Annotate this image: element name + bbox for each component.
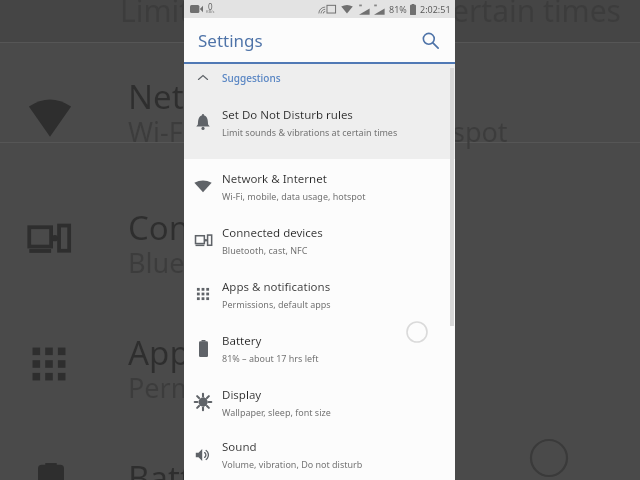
staticText: Sound [222, 439, 257, 455]
staticText: Conn [128, 205, 210, 250]
button[interactable]: Sound [184, 429, 455, 480]
staticText: 81% [389, 3, 407, 15]
staticText: Display [222, 387, 262, 403]
staticText: Set Do Not Disturb rules [222, 107, 353, 123]
staticText: Wi-Fi, mobile, data usage, hotspot [222, 190, 366, 202]
staticText: Network & Internet [222, 171, 327, 187]
staticText: Wallpaper, sleep, font size [222, 406, 331, 418]
staticText: Settings [198, 29, 263, 52]
staticText: Connected devices [222, 225, 323, 241]
button[interactable]: Connected devices [184, 213, 455, 267]
button[interactable]: Set Do Not Disturb rules [184, 91, 455, 153]
staticText: Bluet [128, 244, 195, 281]
staticText: Wi-Fi, [128, 113, 197, 150]
staticText: 0 [208, 1, 213, 12]
staticText: ertain times [452, 0, 621, 31]
staticText: Limit [120, 0, 191, 31]
staticText: Suggestions [222, 71, 281, 85]
staticText: Netw [128, 74, 210, 119]
button[interactable]: Battery [184, 321, 455, 375]
button[interactable]: Search [413, 23, 447, 57]
button[interactable]: Display [184, 375, 455, 429]
staticText: 81% – about 17 hrs left [222, 352, 319, 364]
staticText: Bluetooth, cast, NFC [222, 244, 308, 256]
staticText: Perm [128, 369, 196, 406]
staticText: spot [452, 113, 508, 150]
staticText: Limit sounds & vibrations at certain tim… [222, 126, 398, 138]
staticText: Battery [222, 333, 262, 349]
staticText: Batt [128, 455, 192, 480]
staticText: 2:02:51 [420, 3, 451, 15]
button[interactable]: Suggestions [184, 64, 455, 91]
button[interactable]: Apps & notifications [184, 267, 455, 321]
staticText: Volume, vibration, Do not disturb [222, 458, 363, 470]
staticText: Permissions, default apps [222, 298, 331, 310]
staticText: Apps [128, 330, 206, 375]
staticText: KB/s [206, 9, 215, 14]
staticText: Apps & notifications [222, 279, 331, 295]
button[interactable]: Network & Internet [184, 159, 455, 213]
